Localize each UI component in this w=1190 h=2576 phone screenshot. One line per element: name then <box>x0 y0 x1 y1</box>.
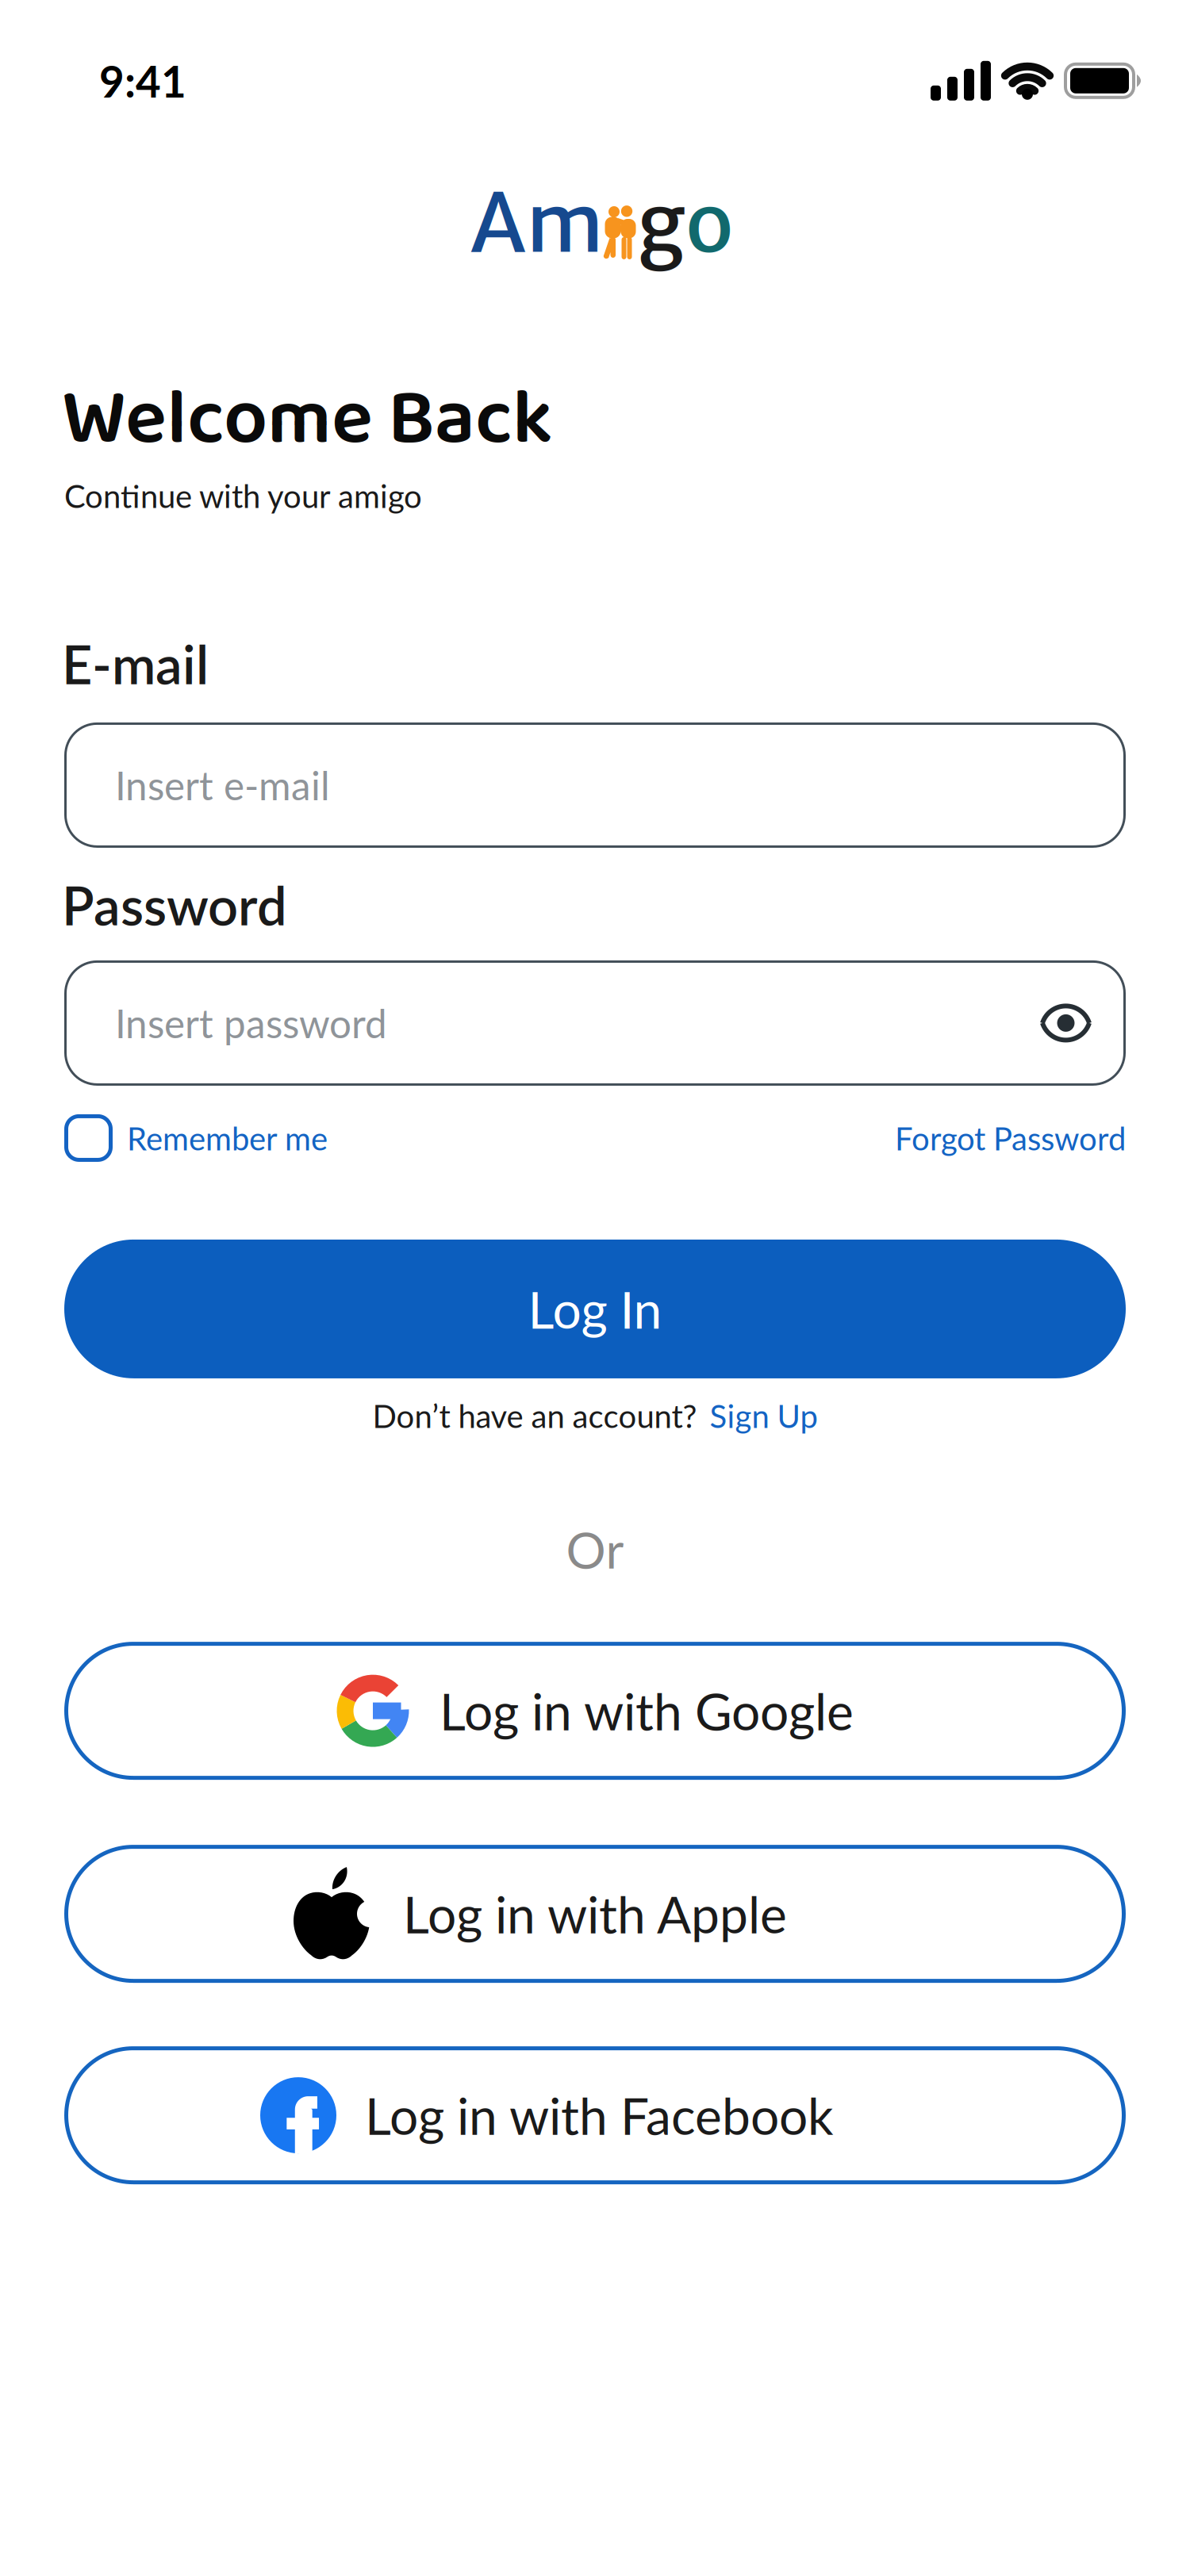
staticText: Or <box>566 1520 624 1579</box>
staticText: Insert password <box>115 1000 387 1046</box>
staticText: E-mail <box>62 632 209 695</box>
staticText: Log in with Facebook <box>365 2085 834 2146</box>
staticText: Insert e-mail <box>115 762 330 809</box>
button[interactable]: Log in with Google <box>64 1642 1126 1780</box>
button[interactable]: Log in with Facebook <box>64 2046 1126 2184</box>
button[interactable]: Log In <box>64 1240 1126 1378</box>
staticText: Remember me <box>127 1119 328 1157</box>
staticText: Password <box>62 873 287 937</box>
button[interactable]: Log in with Apple <box>64 1845 1126 1983</box>
staticText: Forgot Password <box>895 1119 1126 1157</box>
staticText: 9:41 <box>99 55 186 107</box>
button[interactable]: Sign Up <box>697 1397 818 1435</box>
button[interactable]: Insert password <box>64 960 1126 1086</box>
staticText: Welcome Back <box>62 358 553 482</box>
staticText: Don’t have an account? <box>372 1397 697 1435</box>
button[interactable]: Forgot Password <box>895 1119 1126 1157</box>
staticText: Am <box>470 173 604 274</box>
button[interactable]: Show password <box>1042 1006 1089 1040</box>
staticText: Sign Up <box>710 1397 818 1435</box>
staticText: Log In <box>528 1278 662 1339</box>
staticText: Continue with your amigo <box>64 477 422 515</box>
button[interactable]: Insert e-mail <box>64 722 1126 848</box>
staticText: g <box>637 173 685 274</box>
staticText: Log in with Apple <box>403 1883 787 1944</box>
button[interactable]: Remember me <box>64 1114 328 1162</box>
staticText: Log in with Google <box>440 1680 854 1741</box>
staticText: o <box>685 173 734 274</box>
